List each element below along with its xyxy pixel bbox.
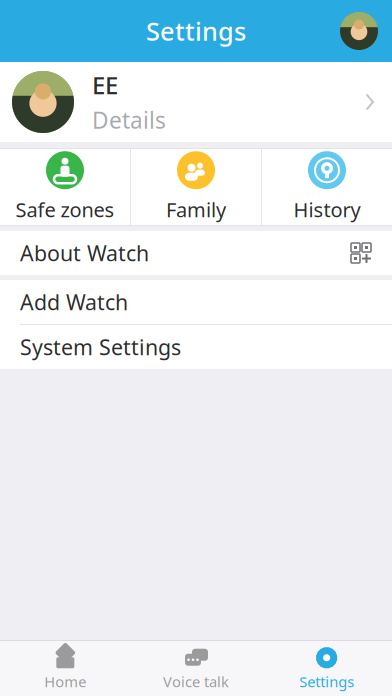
button[interactable]: About Watch: [0, 231, 392, 275]
staticText: About Watch: [20, 239, 149, 267]
staticText: Settings: [299, 672, 354, 691]
button[interactable]: Family: [131, 148, 261, 226]
staticText: System Settings: [20, 333, 181, 361]
staticText: Settings: [146, 14, 246, 48]
staticText: Add Watch: [20, 288, 128, 316]
staticText: Home: [44, 672, 86, 691]
staticText: Voice talk: [163, 672, 229, 691]
button[interactable]: EE: [0, 62, 392, 142]
button[interactable]: Profile: [340, 12, 392, 50]
button[interactable]: Settings: [261, 643, 392, 693]
button[interactable]: Add Watch: [0, 280, 392, 324]
staticText: Details: [92, 105, 166, 135]
button[interactable]: System Settings: [0, 325, 392, 369]
staticText: Safe zones: [15, 196, 114, 223]
staticText: History: [293, 196, 360, 223]
button[interactable]: Voice talk: [131, 643, 261, 693]
staticText: EE: [92, 69, 118, 101]
staticText: Family: [166, 196, 226, 223]
button[interactable]: Safe zones: [0, 148, 130, 226]
button[interactable]: History: [262, 148, 392, 226]
button[interactable]: Home: [0, 643, 131, 693]
